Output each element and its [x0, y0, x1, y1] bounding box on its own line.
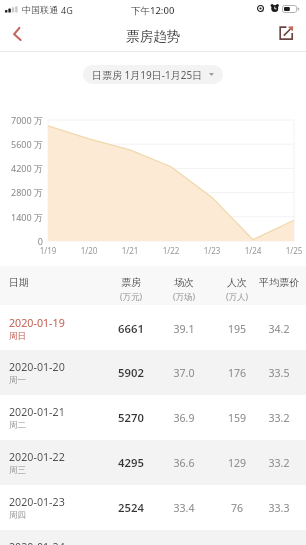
- staticText: 周一: [9, 375, 26, 386]
- button[interactable]: 2020-01-20: [0, 350, 306, 395]
- staticText: 33.2: [249, 456, 306, 470]
- staticText: 1/19: [28, 245, 68, 256]
- staticText: 5600 万: [0, 138, 43, 150]
- staticText: 1/23: [192, 245, 232, 256]
- button[interactable]: 2020-01-24: [0, 530, 306, 545]
- staticText: 1/25: [274, 245, 306, 256]
- staticText: 2020-01-19: [9, 316, 65, 331]
- staticText: 4295: [101, 455, 161, 470]
- button[interactable]: Share: [270, 20, 306, 52]
- staticText: 日期: [9, 276, 29, 289]
- staticText: 2524: [101, 500, 161, 515]
- staticText: 1/22: [151, 245, 191, 256]
- staticText: 1/21: [110, 245, 150, 256]
- button[interactable]: 2020-01-23: [0, 485, 306, 530]
- staticText: 周二: [9, 420, 26, 431]
- staticText: 2020-01-24: [9, 540, 65, 545]
- staticText: 36.6: [154, 456, 214, 470]
- staticText: 159: [207, 411, 267, 425]
- staticText: 33.2: [249, 411, 306, 425]
- staticText: 7000 万: [0, 114, 43, 126]
- staticText: 场次: [174, 276, 194, 289]
- staticText: 6661: [101, 321, 161, 336]
- button[interactable]: 2020-01-21: [0, 395, 306, 440]
- button[interactable]: 2020-01-22: [0, 440, 306, 485]
- staticText: 1/24: [233, 245, 273, 256]
- staticText: 2020-01-20: [9, 360, 65, 375]
- button[interactable]: 日票房 1月19日-1月25日: [83, 65, 223, 84]
- staticText: 5902: [101, 365, 161, 380]
- staticText: 周日: [9, 331, 26, 342]
- staticText: 33.4: [154, 501, 214, 515]
- staticText: 票房趋势: [126, 28, 180, 45]
- staticText: 0: [0, 235, 43, 247]
- staticText: 日票房 1月19日-1月25日: [92, 68, 203, 82]
- staticText: 76: [207, 501, 267, 515]
- staticText: 2020-01-21: [9, 405, 65, 420]
- staticText: 195: [207, 322, 267, 336]
- staticText: 平均票价: [259, 276, 299, 289]
- staticText: (万元): [120, 291, 143, 303]
- staticText: 37.0: [154, 366, 214, 380]
- staticText: (万人): [226, 291, 249, 303]
- staticText: 2020-01-23: [9, 495, 65, 510]
- staticText: 4200 万: [0, 162, 43, 174]
- staticText: 39.1: [154, 322, 214, 336]
- staticText: 周四: [9, 510, 26, 521]
- staticText: 36.9: [154, 411, 214, 425]
- staticText: 4G: [61, 4, 73, 16]
- staticText: (万场): [173, 291, 196, 303]
- staticText: 1400 万: [0, 211, 43, 223]
- staticText: 2800 万: [0, 186, 43, 198]
- staticText: 下午12:00: [131, 4, 175, 17]
- button[interactable]: 2020-01-19: [0, 306, 306, 351]
- staticText: 人次: [227, 276, 247, 289]
- staticText: 34.2: [249, 322, 306, 336]
- staticText: 5270: [101, 410, 161, 425]
- staticText: 129: [207, 456, 267, 470]
- staticText: 33.5: [249, 366, 306, 380]
- staticText: 中国联通: [22, 4, 58, 15]
- staticText: 1/20: [69, 245, 109, 256]
- staticText: 2020-01-22: [9, 450, 65, 465]
- staticText: 176: [207, 366, 267, 380]
- staticText: 票房: [121, 276, 141, 289]
- staticText: 33.3: [249, 501, 306, 515]
- staticText: 周三: [9, 465, 26, 476]
- button[interactable]: Back: [0, 20, 36, 52]
